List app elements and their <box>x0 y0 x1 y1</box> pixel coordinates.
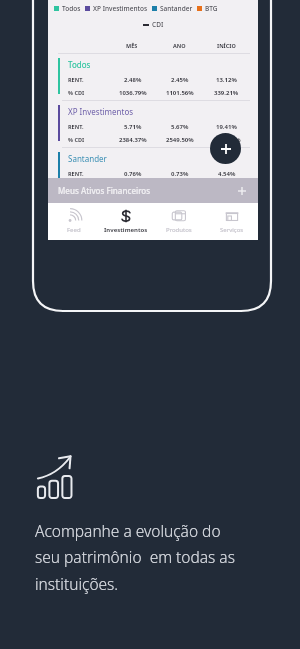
button[interactable]: Santander <box>48 148 258 194</box>
staticText: 2384.37% <box>119 136 147 144</box>
staticText: % CDI <box>68 183 85 190</box>
button[interactable]: Santander <box>152 4 193 13</box>
staticText: RENT. <box>68 123 84 130</box>
button[interactable]: Serviços <box>205 203 258 240</box>
staticText: Investimentos <box>104 226 148 234</box>
button[interactable]: XP Investimentos <box>85 4 148 13</box>
staticText: 1101.56% <box>166 89 194 97</box>
staticText: BTG <box>205 4 218 13</box>
staticText: Todos <box>62 4 81 13</box>
button[interactable]: Adicionar <box>210 133 241 164</box>
staticText: 5.71% <box>124 123 142 131</box>
staticText: Feed <box>67 226 81 234</box>
staticText: Serviços <box>220 226 244 234</box>
staticText: 13.12% <box>216 76 237 84</box>
staticText: INÍCIO <box>217 42 236 49</box>
staticText: 19.41% <box>216 123 237 131</box>
staticText: Santander <box>68 153 107 164</box>
staticText: Todos <box>68 59 91 70</box>
staticText: 2.45% <box>171 76 189 84</box>
staticText: Santander <box>160 4 193 13</box>
staticText: Produtos <box>166 226 192 234</box>
button[interactable]: Feed <box>48 203 100 240</box>
button[interactable]: XP Investimentos <box>48 101 258 147</box>
staticText: 5.67% <box>171 123 189 131</box>
button[interactable]: Todos <box>54 4 81 13</box>
staticText: MÊS <box>126 42 138 49</box>
button[interactable]: Investimentos <box>100 203 152 240</box>
staticText: XP Investimentos <box>93 4 148 13</box>
staticText: 1236.08% <box>213 136 241 144</box>
staticText: % CDI <box>68 89 85 96</box>
staticText: RENT. <box>68 76 84 83</box>
staticText: Acompanhe a evolução do seu patrimônio e… <box>35 520 235 595</box>
staticText: Meus Ativos Financeiros <box>58 185 151 196</box>
staticText: 339.21% <box>214 89 239 97</box>
staticText: ANO <box>173 42 186 49</box>
staticText: 4.54% <box>218 170 236 178</box>
staticText: 0.73% <box>171 170 189 178</box>
staticText: 2549.50% <box>166 136 194 144</box>
button[interactable]: BTG <box>197 4 218 13</box>
staticText: 0.76% <box>124 170 142 178</box>
button[interactable]: Produtos <box>152 203 205 240</box>
button[interactable]: Meus Ativos Financeiros <box>48 178 258 203</box>
staticText: CDI <box>152 20 164 29</box>
staticText: XP Investimentos <box>68 106 134 117</box>
staticText: % CDI <box>68 136 85 143</box>
staticText: 1036.79% <box>119 89 147 97</box>
staticText: 2.48% <box>124 76 142 84</box>
staticText: RENT. <box>68 170 84 177</box>
button[interactable]: Todos <box>48 54 258 100</box>
